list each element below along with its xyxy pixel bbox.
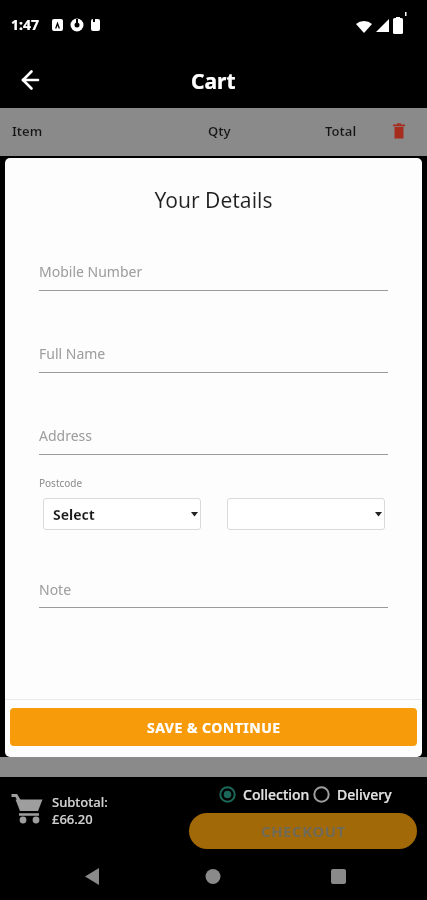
staticText: Full Name — [39, 344, 106, 363]
staticText: Select — [53, 505, 95, 524]
staticText: £66.20 — [52, 810, 93, 828]
staticText: Postcode — [39, 476, 83, 490]
staticText: SAVE & CONTINUE — [147, 718, 281, 737]
staticText: Total — [325, 122, 357, 140]
button[interactable]: CHECKOUT — [189, 813, 417, 849]
staticText: Subtotal: — [52, 793, 108, 811]
staticText: Cart — [191, 67, 236, 96]
staticText: 1:47 — [11, 15, 39, 34]
staticText: Your Details — [5, 186, 422, 215]
staticText: CHECKOUT — [261, 821, 346, 841]
button[interactable]: Delivery — [313, 785, 392, 803]
staticText: Item — [12, 122, 43, 140]
staticText: Address — [39, 426, 92, 445]
button[interactable] — [10, 68, 50, 94]
staticText: Collection — [243, 785, 310, 803]
button[interactable]: Select — [43, 498, 201, 530]
staticText: Qty — [208, 122, 231, 140]
button[interactable] — [143, 860, 285, 900]
staticText: Mobile Number — [39, 262, 143, 281]
button[interactable]: Collection — [219, 785, 310, 803]
staticText: Delivery — [337, 785, 392, 803]
button[interactable] — [390, 123, 408, 140]
button[interactable] — [285, 860, 427, 900]
staticText: Note — [39, 580, 72, 599]
button[interactable] — [0, 860, 143, 900]
button[interactable]: SAVE & CONTINUE — [10, 708, 417, 746]
button[interactable] — [227, 498, 385, 530]
